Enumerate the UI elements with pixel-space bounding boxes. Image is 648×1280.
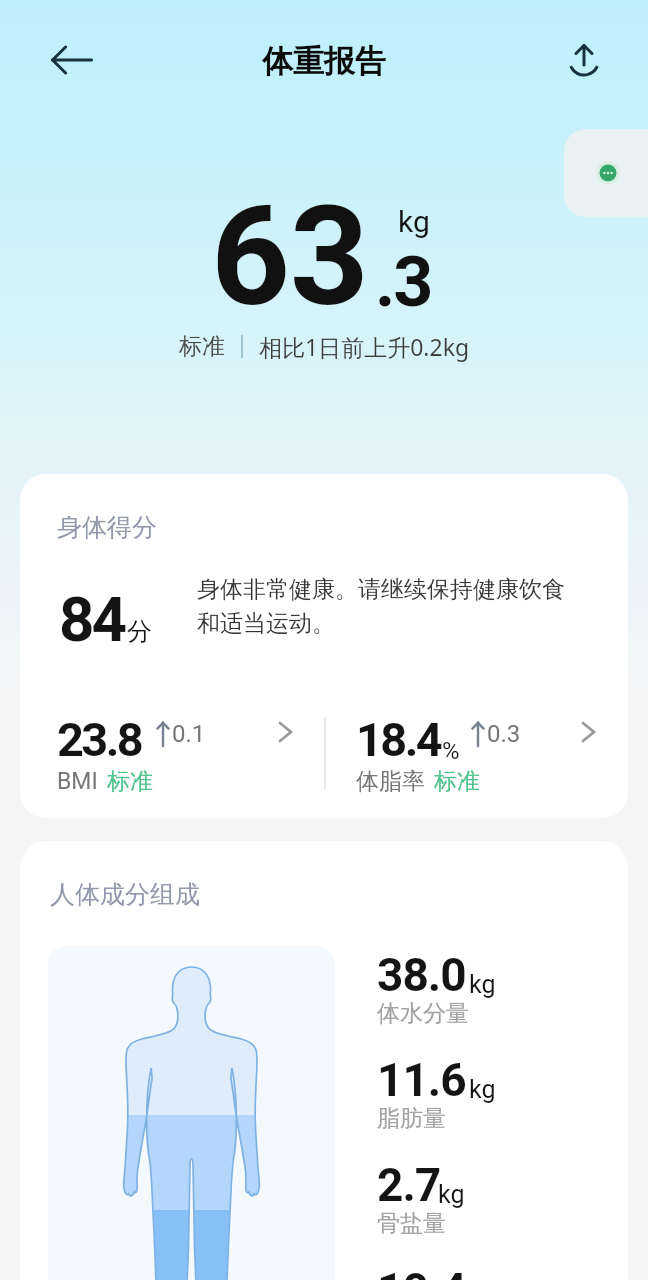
staticText: 0.1: [172, 720, 206, 748]
staticText: 标准: [179, 332, 225, 361]
staticText: 10.4: [377, 1263, 466, 1280]
staticText: 身体非常健康。请继续保持健康饮食和适当运动。: [197, 575, 587, 637]
staticText: 2.7: [377, 1158, 441, 1212]
button[interactable]: 23.8: [57, 712, 324, 792]
staticText: 标准: [434, 767, 480, 796]
button[interactable]: More: [564, 129, 648, 217]
staticText: 人体成分组成: [50, 879, 200, 910]
staticText: 体重报告: [262, 42, 386, 81]
button[interactable]: 18.4: [356, 712, 627, 792]
staticText: 体脂率: [356, 767, 425, 796]
staticText: 标准: [107, 767, 153, 796]
staticText: 相比1日前上升0.2kg: [259, 331, 470, 362]
staticText: .3: [375, 241, 432, 323]
staticText: 骨盐量: [377, 1209, 446, 1238]
staticText: 11.6: [377, 1053, 466, 1107]
staticText: 0.3: [487, 720, 521, 748]
staticText: 体水分量: [377, 999, 469, 1028]
staticText: 63: [211, 176, 369, 338]
staticText: 38.0: [377, 948, 466, 1002]
staticText: kg: [438, 1180, 465, 1209]
staticText: kg: [398, 204, 430, 239]
staticText: %: [442, 737, 460, 765]
staticText: BMI: [57, 768, 98, 795]
button[interactable]: Share: [558, 34, 610, 86]
staticText: 分: [127, 616, 152, 647]
staticText: 84: [59, 583, 125, 656]
staticText: kg: [469, 1075, 496, 1104]
staticText: kg: [469, 970, 496, 999]
staticText: 身体得分: [57, 512, 157, 543]
staticText: 脂肪量: [377, 1104, 446, 1133]
staticText: 23.8: [57, 712, 142, 767]
button[interactable]: Back: [46, 36, 98, 88]
staticText: 18.4: [356, 712, 441, 767]
